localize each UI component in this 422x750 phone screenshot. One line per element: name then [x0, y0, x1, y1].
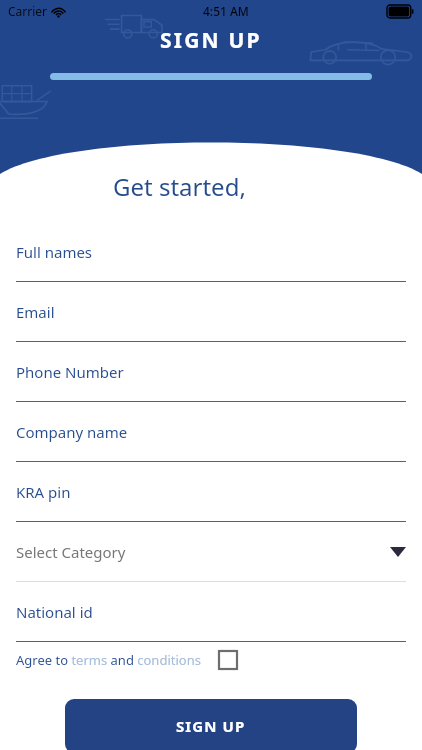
button[interactable]: Select Category	[16, 522, 406, 582]
button[interactable]: Agree to terms and conditions	[16, 642, 406, 678]
staticText: Select Category	[16, 542, 126, 562]
staticText: Email	[16, 302, 55, 322]
button[interactable]: Company name	[16, 402, 406, 462]
staticText: Full names	[16, 242, 93, 262]
button[interactable]: Full names	[16, 222, 406, 282]
button[interactable]: KRA pin	[16, 462, 406, 522]
staticText: Company name	[16, 422, 128, 442]
staticText: SIGN UP	[176, 716, 246, 736]
staticText: Agree to terms and conditions	[16, 651, 201, 669]
button[interactable]: Phone Number	[16, 342, 406, 402]
button[interactable]: Email	[16, 282, 406, 342]
button[interactable]: SIGN UP	[65, 699, 357, 750]
staticText: SIGN UP	[160, 26, 262, 55]
button[interactable]: Agree to terms and conditions checkbox	[219, 651, 237, 669]
staticText: Carrier	[8, 3, 48, 19]
button[interactable]: National id	[16, 582, 406, 642]
staticText: 4:51 AM	[203, 3, 249, 19]
staticText: National id	[16, 602, 93, 622]
staticText: KRA pin	[16, 482, 71, 502]
other: Open category dropdown	[390, 547, 406, 557]
staticText: Get started,	[113, 170, 246, 203]
staticText: Phone Number	[16, 362, 124, 382]
